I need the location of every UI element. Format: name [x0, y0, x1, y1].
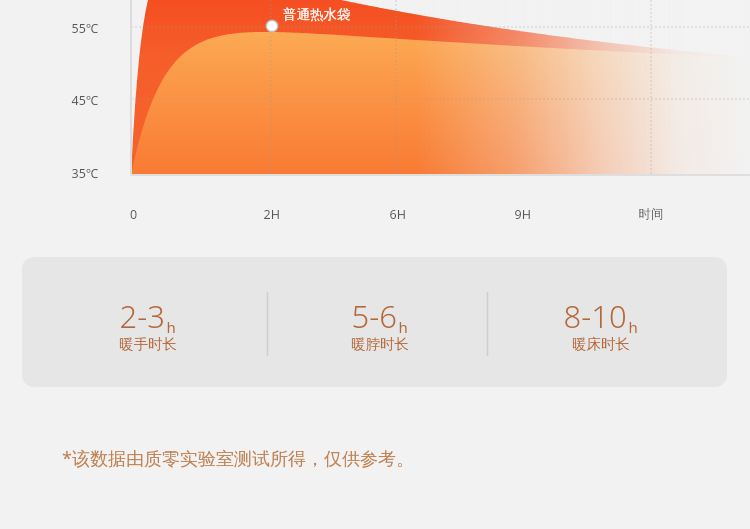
button[interactable]: 暖手时长 2-3h [22, 257, 267, 387]
button[interactable]: 暖床时长 8-10h [488, 257, 727, 387]
button[interactable]: 暖脖时长 5-6h [268, 257, 487, 387]
